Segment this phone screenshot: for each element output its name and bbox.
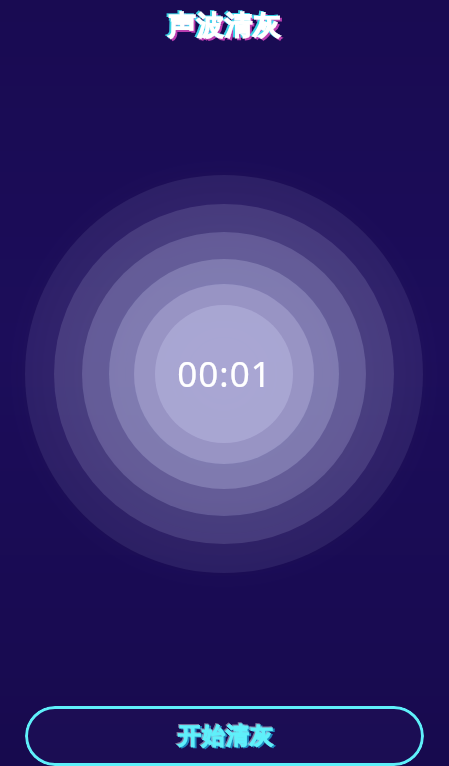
staticText: 声波清灰 [168,9,281,43]
staticText: 声波清灰 [170,11,283,45]
staticText: 开始清灰 [177,722,273,751]
staticText: 声波清灰 [166,8,279,42]
staticText: 开始清灰 [176,721,272,750]
staticText: 00:01 [177,350,272,398]
button[interactable]: 开始清灰 [25,706,424,766]
staticText: 开始清灰 [179,723,275,752]
